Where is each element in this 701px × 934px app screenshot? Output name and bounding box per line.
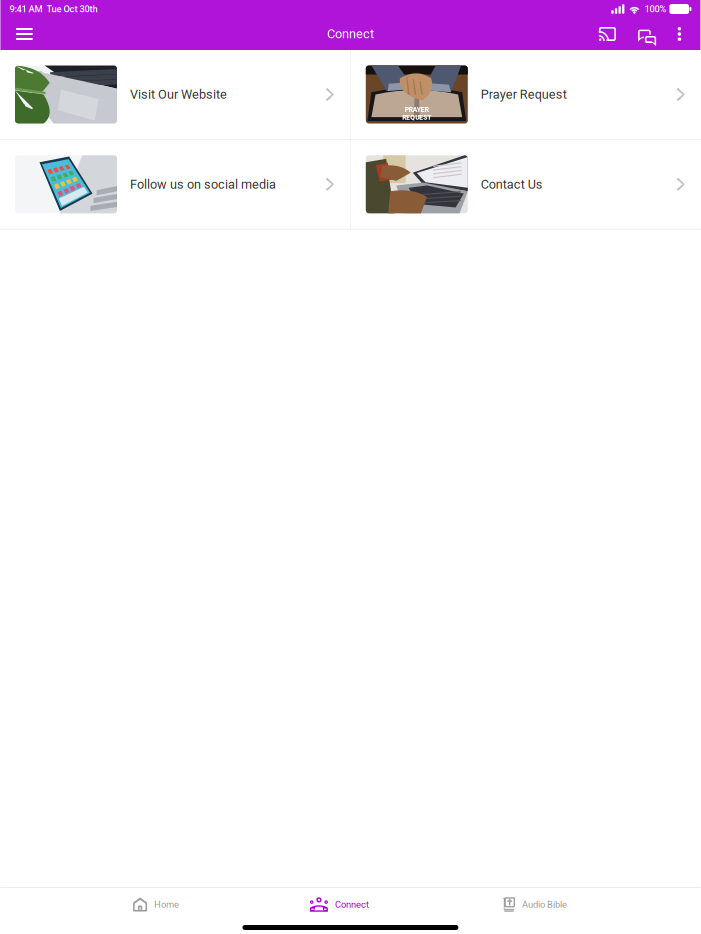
button[interactable]: Contact Us — [351, 140, 701, 229]
button[interactable]: Menu — [2, 18, 46, 50]
staticText: PRAYER — [405, 106, 429, 114]
button[interactable]: Cast to device — [588, 18, 626, 50]
button[interactable]: PRAYER — [351, 50, 701, 139]
button[interactable]: More options — [662, 18, 696, 50]
button[interactable]: Home — [0, 888, 234, 921]
button[interactable]: Messages — [626, 18, 662, 50]
button[interactable]: Visit Our Website — [0, 50, 350, 139]
staticText: Tue Oct 30th — [42, 3, 97, 14]
staticText: Connect — [327, 27, 374, 41]
staticText: Contact Us — [481, 177, 543, 192]
staticText: Audio Bible — [522, 899, 567, 910]
staticText: 9:41 AM — [9, 3, 42, 14]
button[interactable]: Follow us on social media — [0, 140, 350, 229]
button[interactable]: Connect — [234, 888, 467, 921]
staticText: REQUEST — [402, 114, 431, 121]
staticText: Prayer Request — [481, 87, 567, 102]
staticText: Home — [154, 899, 179, 910]
staticText: Visit Our Website — [130, 87, 227, 102]
staticText: Connect — [335, 899, 369, 910]
button[interactable]: Audio Bible — [467, 888, 700, 921]
staticText: 100% — [644, 3, 666, 14]
staticText: Follow us on social media — [130, 177, 276, 192]
